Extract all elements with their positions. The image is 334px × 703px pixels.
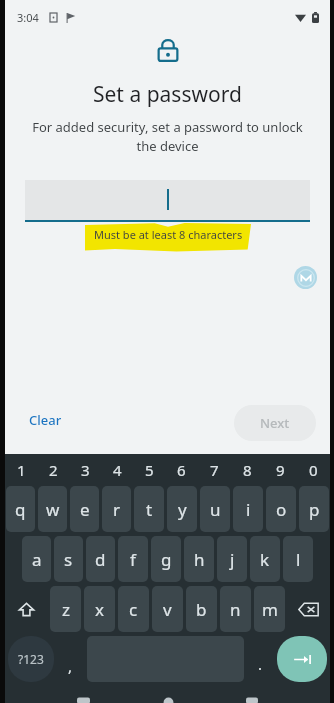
staticText: ?123 — [18, 651, 44, 667]
button[interactable]: q — [6, 486, 35, 532]
staticText: d — [95, 548, 106, 571]
staticText: p — [309, 498, 320, 521]
button[interactable]: e — [70, 486, 99, 532]
staticText: 3:04 — [17, 10, 39, 25]
staticText: 3 — [81, 460, 90, 480]
staticText: h — [194, 548, 205, 571]
button[interactable]: i — [233, 486, 263, 532]
button[interactable]: Back — [77, 697, 90, 703]
button[interactable]: j — [217, 536, 247, 582]
staticText: c — [129, 598, 138, 621]
button[interactable]: c — [118, 586, 149, 632]
staticText: s — [64, 548, 73, 571]
staticText: Must be at least 8 characters — [94, 227, 243, 242]
button[interactable]: 9 — [264, 457, 297, 483]
button[interactable]: p — [299, 486, 329, 532]
staticText: 7 — [210, 460, 219, 480]
staticText: z — [62, 598, 70, 621]
staticText: Clear — [29, 411, 62, 429]
staticText: 0 — [309, 460, 318, 480]
staticText: w — [46, 498, 60, 521]
button[interactable] — [25, 180, 310, 222]
button[interactable]: l — [283, 536, 313, 582]
button[interactable]: ?123 — [8, 636, 54, 682]
button[interactable]: Enter — [277, 636, 327, 682]
staticText: Set a password — [93, 80, 242, 109]
button[interactable]: Motorola assistant — [294, 266, 317, 289]
staticText: a — [32, 548, 42, 571]
button[interactable]: 5 — [133, 457, 165, 483]
button[interactable]: v — [152, 586, 183, 632]
staticText: o — [276, 498, 287, 521]
staticText: y — [178, 498, 187, 521]
button[interactable]: Backspace — [288, 586, 329, 632]
button[interactable]: Recent apps — [246, 697, 258, 703]
button[interactable]: z — [50, 586, 81, 632]
staticText: x — [95, 598, 104, 621]
staticText: l — [296, 548, 301, 571]
staticText: u — [210, 498, 221, 521]
staticText: r — [113, 498, 121, 521]
button[interactable]: m — [254, 586, 285, 632]
button[interactable]: 8 — [231, 457, 264, 483]
button[interactable]: g — [151, 536, 181, 582]
staticText: q — [15, 498, 26, 521]
button[interactable]: n — [220, 586, 251, 632]
button[interactable]: 4 — [101, 457, 133, 483]
button[interactable]: h — [184, 536, 214, 582]
staticText: g — [161, 548, 172, 571]
staticText: j — [230, 548, 235, 571]
staticText: i — [246, 498, 251, 521]
button[interactable]: s — [54, 536, 83, 582]
button[interactable]: k — [250, 536, 280, 582]
staticText: v — [163, 598, 172, 621]
staticText: , — [68, 656, 73, 676]
button[interactable]: 7 — [198, 457, 231, 483]
staticText: k — [260, 548, 270, 571]
button[interactable]: Clear — [19, 405, 72, 435]
button[interactable]: b — [186, 586, 217, 632]
staticText: 5 — [145, 460, 154, 480]
staticText: b — [196, 598, 207, 621]
button[interactable]: a — [22, 536, 51, 582]
button[interactable]: y — [167, 486, 197, 532]
button[interactable]: Shift — [6, 586, 47, 632]
button[interactable]: d — [86, 536, 115, 582]
button[interactable]: u — [200, 486, 230, 532]
staticText: 8 — [243, 460, 252, 480]
button[interactable]: Next — [234, 405, 316, 441]
button[interactable]: 1 — [5, 457, 37, 483]
staticText: f — [130, 548, 136, 571]
staticText: e — [80, 498, 90, 521]
button[interactable]: w — [38, 486, 67, 532]
button[interactable]: . — [247, 636, 274, 682]
staticText: Next — [260, 414, 290, 432]
button[interactable]: 6 — [165, 457, 198, 483]
staticText: m — [262, 598, 278, 621]
button[interactable]: x — [84, 586, 115, 632]
staticText: t — [146, 498, 153, 521]
staticText: For added security, set a password to un… — [31, 118, 304, 155]
staticText: 9 — [276, 460, 285, 480]
button[interactable]: r — [102, 486, 131, 532]
button[interactable]: , — [57, 636, 84, 682]
button[interactable]: t — [134, 486, 164, 532]
staticText: 4 — [113, 460, 122, 480]
staticText: n — [230, 598, 241, 621]
button[interactable]: o — [266, 486, 296, 532]
staticText: 6 — [177, 460, 186, 480]
button[interactable]: 0 — [297, 457, 330, 483]
staticText: 2 — [49, 460, 58, 480]
button[interactable]: Home — [163, 697, 174, 703]
button[interactable]: 2 — [37, 457, 69, 483]
button[interactable]: f — [118, 536, 148, 582]
staticText: . — [258, 654, 263, 674]
staticText: 1 — [17, 460, 26, 480]
button[interactable]: 3 — [69, 457, 101, 483]
